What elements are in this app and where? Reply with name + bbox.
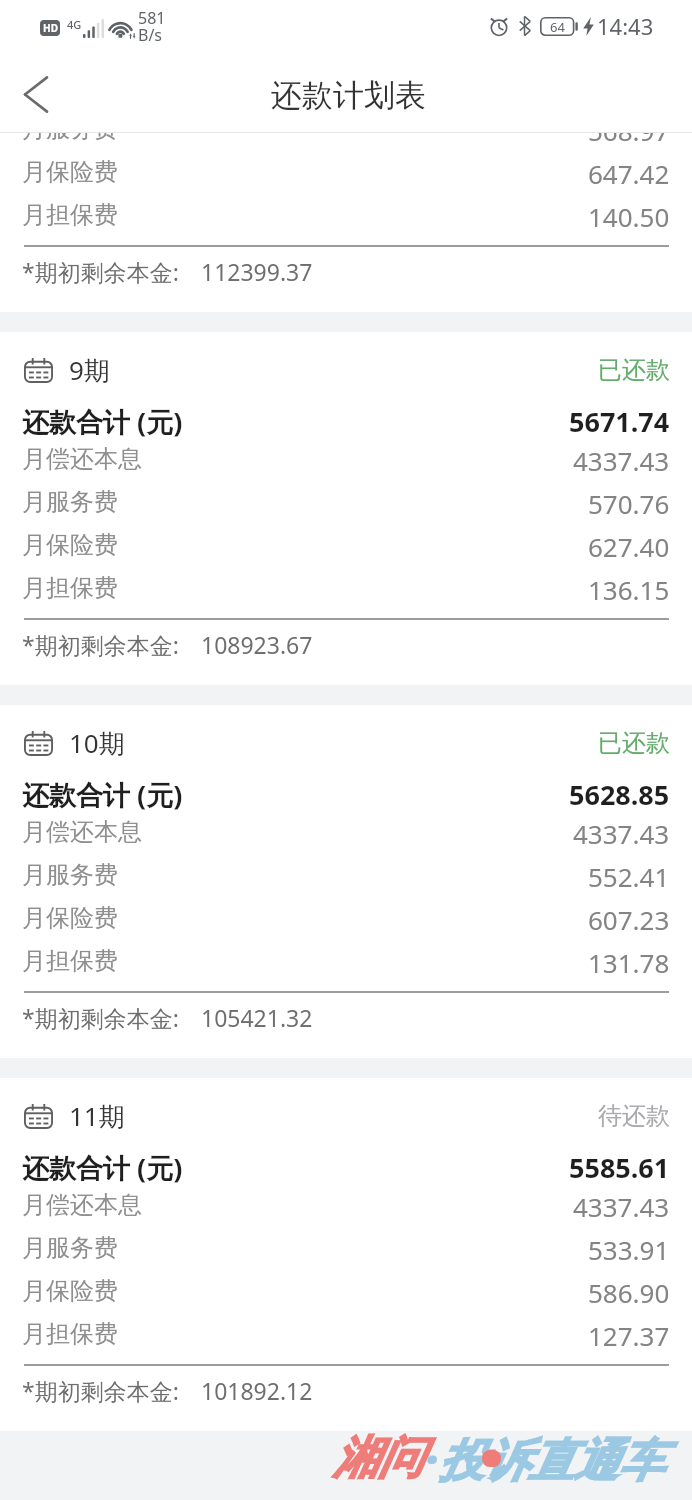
staticText: 627.40 [588,529,670,564]
staticText: ·投诉直通车 [425,1428,664,1489]
staticText: 136.15 [588,572,670,607]
button[interactable]: Back [0,55,72,133]
staticText: 月担保费 [22,1319,118,1349]
staticText: B/s [138,24,163,46]
staticText: 607.23 [588,902,670,937]
staticText: 4G [67,17,82,32]
staticText: 4337.43 [573,443,670,478]
staticText: 140.50 [588,199,670,234]
staticText: 112399.37 [201,256,313,287]
staticText: *期初剩余本金: [22,1002,179,1033]
staticText: 月服务费 [22,487,118,517]
staticText: 还款计划表 [271,76,426,115]
staticText: 568.97 [588,133,670,148]
staticText: 552.41 [588,859,670,894]
staticText: *期初剩余本金: [22,1375,179,1406]
staticText: *期初剩余本金: [22,629,179,660]
staticText: 5585.61 [569,1149,670,1186]
staticText: 108923.67 [201,629,313,660]
staticText: 5671.74 [569,403,670,440]
staticText: 10期 [69,725,125,761]
staticText: 月偿还本息 [22,1190,142,1220]
staticText: 月保险费 [22,157,118,187]
staticText: 月偿还本息 [22,817,142,847]
staticText: 月服务费 [22,133,118,144]
staticText: 647.42 [588,156,670,191]
button[interactable]: 9期 [0,332,692,685]
staticText: 5628.85 [569,776,670,813]
staticText: 还款合计 (元) [22,403,183,440]
staticText: 月保险费 [22,530,118,560]
staticText: 581 [138,7,166,29]
staticText: 月保险费 [22,903,118,933]
staticText: 9期 [69,352,110,388]
staticText: 月服务费 [22,860,118,890]
button[interactable]: 8期 [0,133,692,312]
staticText: 131.78 [588,945,670,980]
button[interactable]: 10期 [0,705,692,1058]
staticText: 4337.43 [573,1189,670,1224]
staticText: HD [43,21,58,35]
staticText: 已还款 [598,728,670,758]
staticText: 月担保费 [22,946,118,976]
staticText: 湘问 [333,1430,423,1487]
staticText: 127.37 [588,1318,670,1353]
staticText: 533.91 [588,1232,670,1267]
staticText: 586.90 [588,1275,670,1310]
staticText: 已还款 [598,355,670,385]
staticText: 11期 [69,1098,125,1134]
staticText: 570.76 [588,486,670,521]
staticText: 105421.32 [201,1002,313,1033]
staticText: 64 [550,18,565,36]
staticText: 月偿还本息 [22,444,142,474]
staticText: *期初剩余本金: [22,256,179,287]
staticText: 月担保费 [22,573,118,603]
staticText: 月服务费 [22,1233,118,1263]
staticText: 还款合计 (元) [22,1149,183,1186]
staticText: 14:43 [597,11,654,41]
staticText: 4337.43 [573,816,670,851]
staticText: 月担保费 [22,200,118,230]
staticText: 月保险费 [22,1276,118,1306]
staticText: 待还款 [598,1101,670,1131]
staticText: 还款合计 (元) [22,776,183,813]
button[interactable]: 11期 [0,1078,692,1431]
staticText: 101892.12 [201,1375,313,1406]
